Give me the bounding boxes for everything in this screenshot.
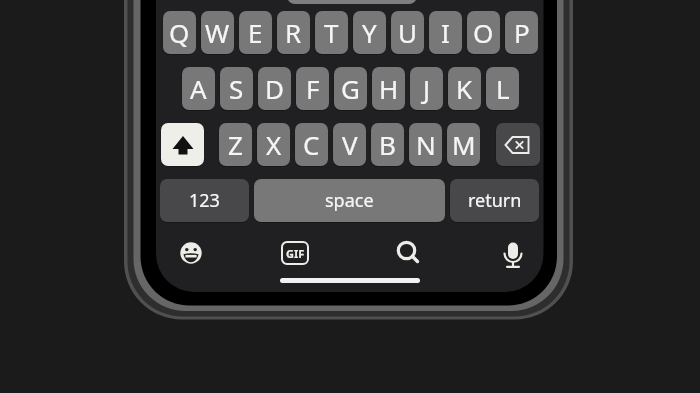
button[interactable]: R: [277, 11, 310, 54]
button[interactable]: U: [391, 11, 424, 54]
button[interactable]: D: [258, 67, 291, 110]
button[interactable]: H: [372, 67, 405, 110]
staticText: Y: [362, 15, 377, 50]
staticText: M: [452, 127, 476, 162]
staticText: GIF: [286, 246, 305, 261]
staticText: space: [325, 188, 374, 213]
staticText: F: [306, 71, 320, 106]
button[interactable]: T: [315, 11, 348, 54]
button[interactable]: B: [371, 123, 404, 166]
button[interactable]: 123: [160, 179, 249, 222]
button[interactable]: N: [409, 123, 442, 166]
button[interactable]: W: [201, 11, 234, 54]
staticText: S: [229, 71, 244, 106]
staticText: D: [265, 71, 284, 106]
staticText: E: [248, 15, 263, 50]
staticText: J: [423, 71, 431, 106]
button[interactable]: [496, 123, 540, 166]
staticText: K: [456, 71, 473, 106]
staticText: A: [190, 71, 207, 106]
button[interactable]: K: [448, 67, 481, 110]
button[interactable]: space: [254, 179, 445, 222]
button[interactable]: S: [220, 67, 253, 110]
button[interactable]: [179, 241, 203, 265]
button[interactable]: V: [333, 123, 366, 166]
button[interactable]: [395, 239, 421, 265]
staticText: N: [416, 127, 436, 162]
button[interactable]: F: [296, 67, 329, 110]
staticText: C: [303, 127, 320, 162]
staticText: O: [473, 15, 494, 50]
staticText: Z: [228, 127, 243, 162]
button[interactable]: M: [447, 123, 480, 166]
button[interactable]: G: [334, 67, 367, 110]
staticText: T: [324, 15, 339, 50]
staticText: W: [205, 15, 230, 50]
button[interactable]: L: [486, 67, 519, 110]
button[interactable]: [161, 123, 204, 166]
staticText: Q: [169, 15, 190, 50]
staticText: X: [266, 127, 282, 162]
staticText: L: [496, 71, 510, 106]
button[interactable]: P: [505, 11, 538, 54]
button[interactable]: return: [450, 179, 539, 222]
staticText: V: [342, 127, 358, 162]
staticText: return: [468, 188, 522, 213]
staticText: H: [379, 71, 399, 106]
staticText: P: [514, 15, 530, 50]
staticText: G: [341, 71, 360, 106]
staticText: U: [398, 15, 418, 50]
button[interactable]: I: [429, 11, 462, 54]
button[interactable]: A: [182, 67, 215, 110]
button[interactable]: Y: [353, 11, 386, 54]
staticText: 123: [189, 188, 220, 213]
staticText: B: [379, 127, 396, 162]
staticText: I: [441, 15, 450, 50]
button[interactable]: O: [467, 11, 500, 54]
button[interactable]: E: [239, 11, 272, 54]
button[interactable]: Q: [163, 11, 196, 54]
staticText: R: [285, 15, 302, 50]
button[interactable]: GIF: [281, 241, 309, 265]
button[interactable]: C: [295, 123, 328, 166]
button[interactable]: J: [410, 67, 443, 110]
button[interactable]: X: [257, 123, 290, 166]
button[interactable]: Z: [219, 123, 252, 166]
button[interactable]: [500, 240, 526, 270]
